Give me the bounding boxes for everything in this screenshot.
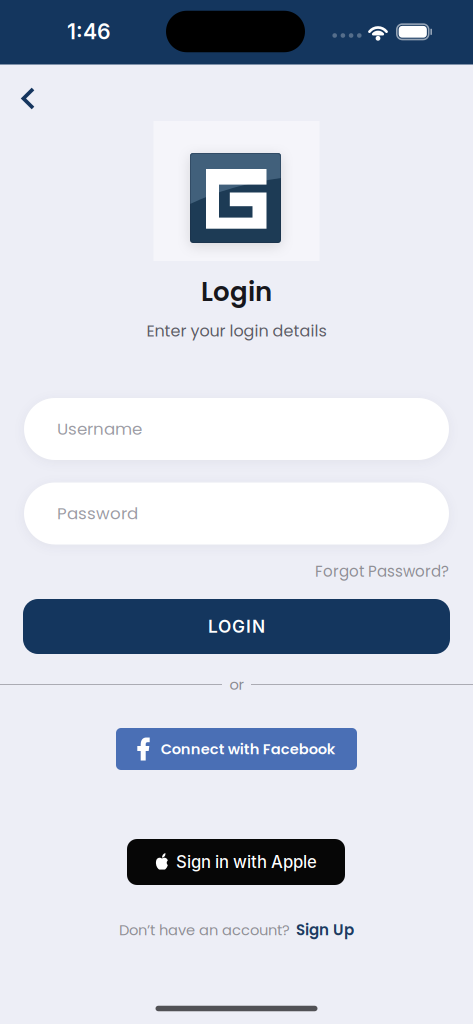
staticText: LOGIN: [208, 616, 265, 637]
button[interactable]: Forgot Password?: [315, 561, 449, 582]
staticText: Username: [57, 417, 142, 441]
button[interactable]: Username: [24, 398, 449, 460]
button[interactable]: LOGIN: [23, 599, 450, 654]
staticText: or: [229, 674, 243, 695]
button[interactable]: Back: [6, 76, 50, 120]
staticText: Password: [57, 502, 138, 525]
staticText: 1:46: [67, 19, 111, 44]
staticText: Connect with Facebook: [161, 739, 336, 759]
button[interactable]: Sign in with Apple: [127, 839, 345, 885]
staticText: Enter your login details: [146, 320, 326, 342]
button[interactable]: Connect with Facebook: [116, 728, 357, 770]
button[interactable]: Sign Up: [296, 919, 354, 941]
staticText: Sign in with Apple: [176, 852, 317, 872]
staticText: Login: [201, 274, 272, 310]
button[interactable]: Password: [24, 482, 449, 544]
staticText: Sign Up: [296, 919, 354, 941]
staticText: Don’t have an account?: [119, 920, 290, 940]
staticText: Forgot Password?: [315, 561, 449, 582]
